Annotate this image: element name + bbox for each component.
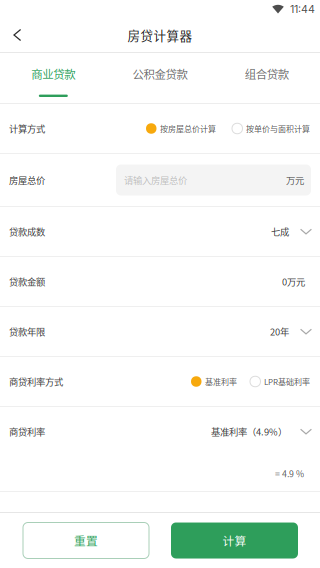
- staticText: LPR基础利率: [264, 376, 310, 387]
- staticText: 11:44: [290, 2, 315, 15]
- staticText: 商贷利率: [9, 425, 45, 438]
- staticText: 重置: [74, 532, 98, 549]
- staticText: 公积金贷款: [132, 65, 187, 82]
- staticText: 0万元: [282, 275, 305, 288]
- staticText: 组合贷款: [245, 65, 289, 82]
- staticText: 按单价与面积计算: [246, 123, 310, 134]
- staticText: 20年: [270, 325, 289, 338]
- button[interactable]: 商业贷款: [0, 53, 107, 103]
- button[interactable]: 按房屋总价计算: [146, 123, 216, 134]
- staticText: 贷款年限: [9, 325, 45, 338]
- staticText: = 4.9 %: [275, 467, 304, 480]
- staticText: 房屋总价: [9, 173, 45, 187]
- staticText: 按房屋总价计算: [160, 123, 216, 134]
- button[interactable]: 公积金贷款: [107, 53, 213, 103]
- button[interactable]: 按单价与面积计算: [232, 123, 310, 134]
- staticText: 贷款成数: [9, 225, 45, 238]
- button[interactable]: 组合贷款: [213, 53, 320, 103]
- staticText: 房贷计算器: [127, 26, 192, 44]
- button[interactable]: 基准利率: [191, 376, 237, 387]
- staticText: 计算: [222, 532, 246, 549]
- staticText: 商业贷款: [31, 65, 75, 82]
- staticText: 请输入房屋总价: [124, 173, 187, 187]
- button[interactable]: Back: [0, 18, 36, 52]
- button[interactable]: 计算: [171, 522, 298, 558]
- staticText: 七成: [271, 225, 289, 238]
- staticText: 基准利率（4.9%）: [211, 425, 287, 438]
- staticText: 商贷利率方式: [9, 375, 63, 388]
- staticText: 计算方式: [9, 122, 45, 135]
- button[interactable]: 重置: [23, 522, 149, 558]
- staticText: 基准利率: [205, 376, 237, 387]
- staticText: 万元: [286, 173, 304, 187]
- staticText: 贷款金额: [9, 275, 45, 288]
- button[interactable]: LPR基础利率: [250, 376, 310, 387]
